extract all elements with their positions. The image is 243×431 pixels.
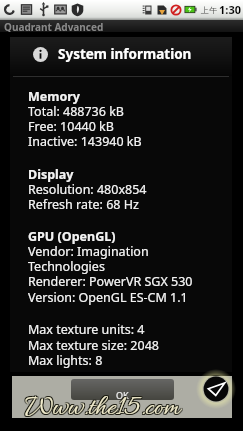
button[interactable]: OK — [71, 379, 174, 400]
staticText: 1:30 — [219, 2, 241, 17]
staticText: Max texture units: 4 — [28, 321, 145, 338]
staticText: Free: 10440 kB — [28, 118, 114, 135]
staticText: GPU (OpenGL) — [28, 228, 116, 245]
staticText: Display — [28, 166, 74, 183]
staticText: Max texture size: 2048 — [28, 337, 159, 354]
staticText: 上午 — [201, 5, 217, 15]
staticText: Www.the15.com — [25, 393, 180, 428]
staticText: Www.the15.com — [26, 391, 181, 426]
staticText: System information — [58, 45, 192, 63]
staticText: Inactive: 143940 kB — [28, 133, 142, 150]
staticText: Refresh rate: 68 Hz — [28, 196, 139, 213]
staticText: Www.the15.com — [26, 392, 181, 427]
staticText: OK — [116, 389, 129, 400]
staticText: Memory — [28, 88, 80, 105]
staticText: Total: 488736 kB — [28, 103, 124, 120]
staticText: Www.the15.com — [24, 391, 179, 426]
staticText: Www.the15.com — [25, 392, 180, 427]
staticText: Max lights: 8 — [28, 352, 103, 369]
staticText: Www.the15.com — [25, 391, 180, 426]
staticText: Version: OpenGL ES-CM 1.1 — [28, 289, 188, 306]
button[interactable]: Site logo — [196, 369, 236, 409]
staticText: Resolution: 480x854 — [28, 181, 147, 198]
staticText: Www.the15.com — [24, 392, 179, 427]
staticText: Www.the15.com — [24, 393, 179, 428]
staticText: Renderer: PowerVR SGX 530 — [28, 273, 193, 290]
staticText: Www.the15.com — [26, 393, 181, 428]
staticText: Vendor: Imagination — [28, 243, 149, 260]
staticText: Quadrant Advanced — [4, 20, 104, 32]
staticText: Technologies — [28, 258, 105, 275]
